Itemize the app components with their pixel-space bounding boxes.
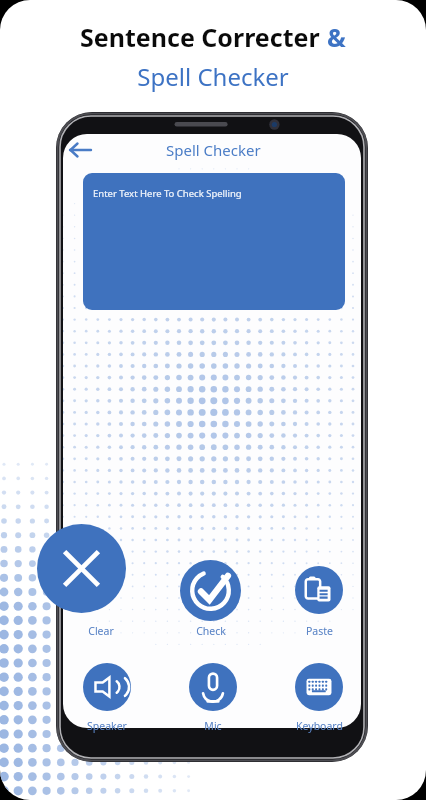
button[interactable]: Clear [37, 524, 126, 613]
button[interactable]: Keyboard [295, 663, 343, 711]
staticText: Mic [204, 719, 222, 733]
staticText: Keyboard [296, 719, 343, 733]
staticText: Sentence Correcter [80, 20, 327, 54]
staticText: Check [196, 624, 226, 638]
button[interactable]: Back [68, 140, 94, 160]
staticText: Spell Checker [137, 60, 289, 93]
button[interactable]: Enter Text Here To Check Spelling [83, 173, 345, 310]
staticText: & [327, 20, 346, 54]
staticText: Enter Text Here To Check Spelling [93, 187, 242, 200]
button[interactable]: Speaker [83, 663, 131, 711]
button[interactable]: Check [180, 560, 241, 621]
button[interactable]: Paste [295, 566, 343, 614]
button[interactable]: Mic [189, 663, 237, 711]
staticText: Spell Checker [166, 140, 261, 160]
staticText: Clear [88, 624, 114, 638]
staticText: Speaker [87, 719, 127, 733]
staticText: Paste [306, 624, 333, 638]
